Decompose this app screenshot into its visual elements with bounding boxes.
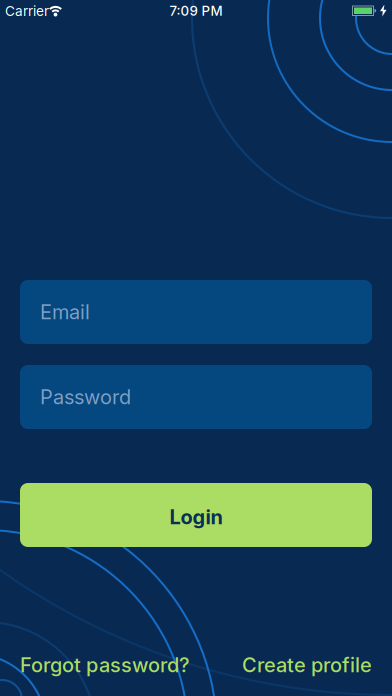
staticText: Carrier — [5, 3, 49, 19]
staticText: Forgot password? — [20, 653, 190, 677]
staticText: Create profile — [242, 653, 372, 677]
staticText: Login — [169, 505, 222, 529]
button[interactable]: Password — [20, 365, 372, 429]
button[interactable]: Login — [20, 483, 372, 547]
button[interactable]: Email — [20, 280, 372, 344]
button[interactable]: Create profile — [242, 653, 372, 677]
staticText: Password — [40, 385, 131, 409]
button[interactable]: Forgot password? — [20, 653, 190, 677]
staticText: 7:09 PM — [169, 3, 222, 19]
staticText: Email — [40, 300, 90, 324]
